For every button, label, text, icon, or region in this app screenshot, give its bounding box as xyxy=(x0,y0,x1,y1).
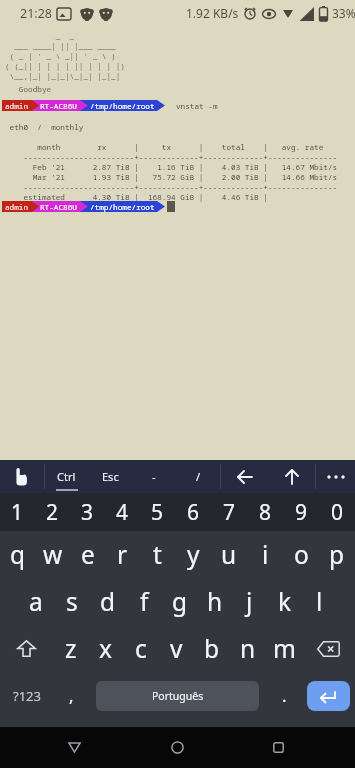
button[interactable]: v xyxy=(158,625,194,672)
button[interactable]: u xyxy=(211,531,247,578)
staticText: n xyxy=(240,632,256,665)
staticText: u xyxy=(221,538,237,571)
staticText: _ _ ___ ____| || |___ ____ ( _ | ' _ \ _… xyxy=(5,31,125,81)
staticText: month rx | tx | total | avg. rate ------… xyxy=(5,142,338,202)
staticText: 9 xyxy=(295,498,308,527)
button[interactable]: , xyxy=(53,672,89,719)
button[interactable]: i xyxy=(247,531,283,578)
button[interactable]: j xyxy=(232,578,267,625)
staticText: 1 xyxy=(11,498,24,527)
button[interactable]: p xyxy=(319,531,355,578)
button[interactable] xyxy=(157,727,197,767)
staticText: ?123 xyxy=(13,687,41,705)
button[interactable]: n xyxy=(230,625,266,672)
staticText: 3 xyxy=(81,498,94,527)
button[interactable]: k xyxy=(267,578,302,625)
staticText: 2 xyxy=(46,498,59,527)
staticText: k xyxy=(278,585,292,618)
staticText: g xyxy=(172,585,188,618)
staticText: s xyxy=(66,585,78,618)
staticText: v xyxy=(170,632,183,665)
button[interactable]: h xyxy=(197,578,232,625)
button[interactable] xyxy=(0,625,53,672)
button[interactable]: ?123 xyxy=(0,672,53,719)
button[interactable]: 4 xyxy=(105,493,140,531)
button[interactable]: w xyxy=(35,531,70,578)
button[interactable]: s xyxy=(54,578,90,625)
button[interactable]: 5 xyxy=(140,493,175,531)
button[interactable]: 2 xyxy=(35,493,70,531)
staticText: 33% xyxy=(332,5,355,21)
button[interactable]: l xyxy=(302,578,337,625)
button[interactable]: g xyxy=(162,578,197,625)
staticText: q xyxy=(10,538,26,571)
button[interactable] xyxy=(0,460,44,493)
staticText: 5 xyxy=(151,498,164,527)
staticText: w xyxy=(43,538,63,571)
staticText: 1.92 KB/s xyxy=(186,5,239,21)
staticText: vnstat -m xyxy=(176,101,218,111)
button[interactable]: a xyxy=(18,578,54,625)
staticText: 4 xyxy=(116,498,129,527)
staticText: Goodbye xyxy=(5,84,52,94)
button[interactable]: Esc xyxy=(88,460,132,493)
staticText: e xyxy=(81,538,95,571)
button[interactable]: 0 xyxy=(319,493,355,531)
button[interactable]: r xyxy=(105,531,140,578)
button[interactable]: c xyxy=(123,625,158,672)
button[interactable]: 3 xyxy=(70,493,105,531)
button[interactable]: m xyxy=(266,625,302,672)
button[interactable] xyxy=(307,681,350,711)
staticText: /tmp/home/root xyxy=(90,202,155,212)
button[interactable]: 8 xyxy=(247,493,283,531)
button[interactable]: d xyxy=(90,578,126,625)
button[interactable]: y xyxy=(175,531,211,578)
staticText: x xyxy=(99,632,112,665)
staticText: . xyxy=(282,684,287,707)
staticText: p xyxy=(329,538,345,571)
button[interactable]: . xyxy=(266,672,302,719)
button[interactable] xyxy=(316,460,355,493)
button[interactable]: t xyxy=(140,531,175,578)
button[interactable]: 6 xyxy=(175,493,211,531)
button[interactable]: o xyxy=(283,531,319,578)
button[interactable]: b xyxy=(194,625,230,672)
staticText: - xyxy=(152,469,156,484)
staticText: eth0 / monthly xyxy=(5,122,84,132)
staticText: f xyxy=(140,585,149,618)
staticText: l xyxy=(316,585,323,618)
button[interactable]: x xyxy=(88,625,123,672)
staticText: 7 xyxy=(223,498,236,527)
staticText: , xyxy=(69,684,74,707)
button[interactable]: z xyxy=(53,625,88,672)
staticText: z xyxy=(65,632,77,665)
button[interactable]: Português xyxy=(96,681,259,711)
button[interactable]: Ctrl xyxy=(45,460,88,493)
button[interactable] xyxy=(54,727,94,767)
button[interactable]: e xyxy=(70,531,105,578)
button[interactable]: 9 xyxy=(283,493,319,531)
staticText: j xyxy=(246,585,253,618)
staticText: o xyxy=(294,538,309,571)
staticText: admin xyxy=(5,202,29,212)
staticText: c xyxy=(135,632,147,665)
button[interactable]: 1 xyxy=(0,493,35,531)
button[interactable]: / xyxy=(176,460,220,493)
button[interactable]: q xyxy=(0,531,35,578)
staticText: RT-AC86U xyxy=(40,101,77,111)
staticText: 8 xyxy=(259,498,272,527)
staticText: a xyxy=(29,585,43,618)
staticText: m xyxy=(273,632,296,665)
button[interactable]: 7 xyxy=(211,493,247,531)
button[interactable]: - xyxy=(132,460,176,493)
staticText: / xyxy=(196,469,201,484)
button[interactable] xyxy=(302,625,355,672)
button[interactable] xyxy=(268,460,315,493)
staticText: 6 xyxy=(187,498,200,527)
staticText: Português xyxy=(152,689,204,703)
button[interactable]: f xyxy=(126,578,162,625)
staticText: admin xyxy=(5,101,29,111)
staticText: r xyxy=(117,538,128,571)
button[interactable] xyxy=(221,460,268,493)
button[interactable] xyxy=(258,727,298,767)
